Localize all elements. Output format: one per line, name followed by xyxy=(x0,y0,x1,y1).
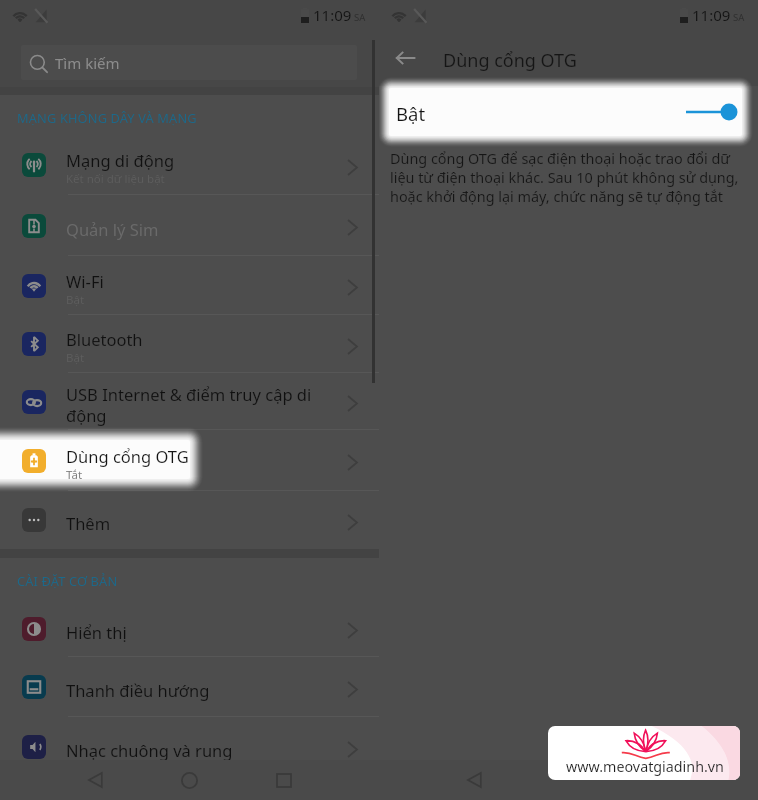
button[interactable]: Nhạc chuông và rung xyxy=(0,717,379,777)
button[interactable]: Quản lý Sim xyxy=(0,195,379,256)
staticText: Dùng cổng OTG xyxy=(66,445,189,467)
button[interactable]: USB Internet & điểm truy cập di động xyxy=(0,373,379,430)
staticText: Bluetooth xyxy=(66,328,143,350)
other: Toggle OTG xyxy=(686,100,738,124)
staticText: Nhạc chuông và rung xyxy=(66,739,233,761)
staticText: Bật xyxy=(396,101,426,126)
staticText: MẠNG KHÔNG DÂY VÀ MẠNG xyxy=(17,109,197,126)
staticText: Thanh điều hướng xyxy=(66,679,210,701)
staticText: Thêm xyxy=(66,512,111,534)
button[interactable] xyxy=(0,430,379,491)
button[interactable]: www.meovatgiadinh.vn xyxy=(548,726,740,780)
button[interactable]: Recents xyxy=(268,760,300,800)
staticText: Mạng di động xyxy=(66,149,175,171)
button[interactable]: Tìm kiếm xyxy=(21,45,357,80)
staticText: Bật xyxy=(66,350,85,366)
button[interactable]: Wi-Fi xyxy=(0,256,379,315)
button[interactable]: Back xyxy=(386,39,424,77)
staticText: Tắt xyxy=(66,467,83,483)
button[interactable]: Bluetooth xyxy=(0,315,379,373)
staticText: www.meovatgiadinh.vn xyxy=(566,757,724,776)
button[interactable]: Bật xyxy=(379,88,758,136)
button[interactable]: Dùng cổng OTG xyxy=(0,430,379,491)
staticText: 11:09 xyxy=(313,5,352,25)
button[interactable]: Hiển thị xyxy=(0,600,379,657)
staticText: Hiển thị xyxy=(66,621,127,643)
staticText: SA xyxy=(733,11,745,24)
staticText: SA xyxy=(354,11,366,24)
button[interactable]: Mạng di động xyxy=(0,135,379,195)
staticText: CÀI ĐẶT CƠ BẢN xyxy=(17,572,118,589)
button[interactable]: Home xyxy=(173,760,205,800)
staticText: Tìm kiếm xyxy=(55,53,120,73)
staticText: Dùng cổng OTG để sạc điện thoại hoặc tra… xyxy=(390,149,739,206)
button[interactable]: Back xyxy=(458,760,490,800)
staticText: 11:09 xyxy=(692,5,731,25)
button[interactable]: Thanh điều hướng xyxy=(0,657,379,717)
button[interactable]: Thêm xyxy=(0,491,379,549)
staticText: Wi-Fi xyxy=(66,270,104,292)
staticText: Quản lý Sim xyxy=(66,218,159,240)
staticText: Kết nối dữ liệu bật xyxy=(66,171,165,187)
staticText: Bật xyxy=(66,292,85,308)
staticText: Dùng cổng OTG xyxy=(443,48,577,73)
staticText: USB Internet & điểm truy cập di động xyxy=(66,383,312,427)
button[interactable]: Back xyxy=(79,760,111,800)
